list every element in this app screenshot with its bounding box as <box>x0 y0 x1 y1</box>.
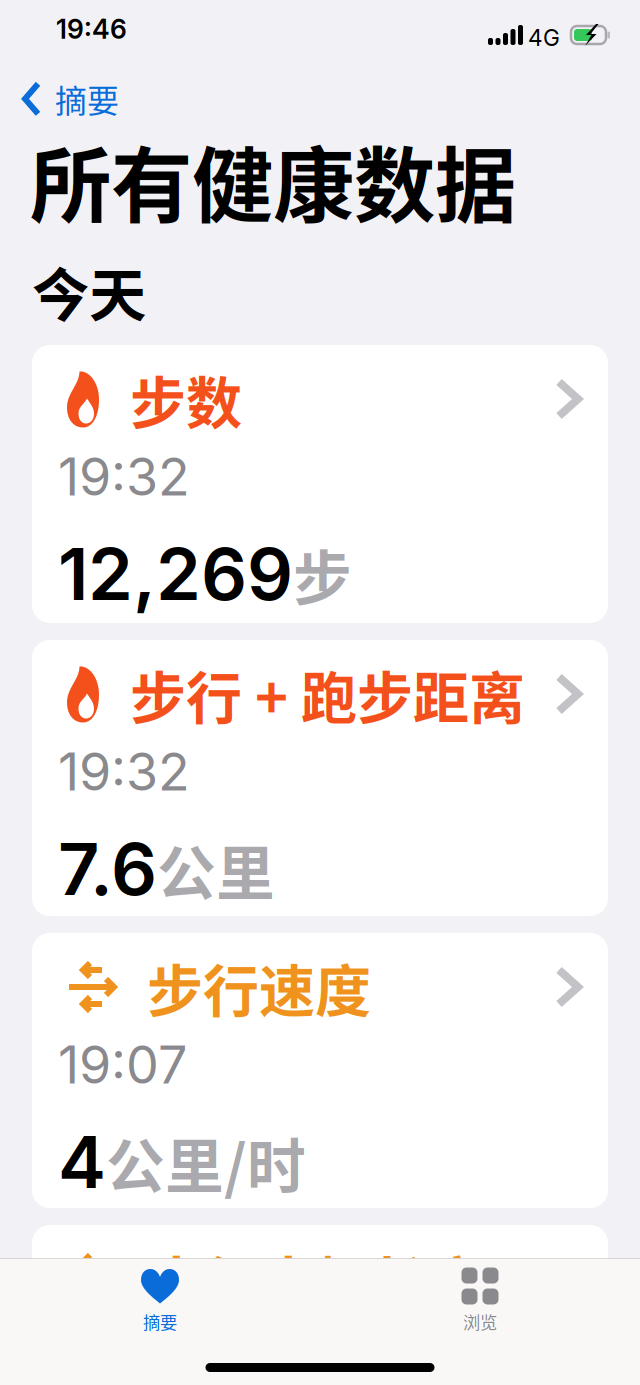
staticText: 19:46 <box>56 13 127 45</box>
button[interactable]: 步行速度 <box>32 933 608 1208</box>
staticText: 步行步幅长度 <box>147 1238 483 1320</box>
staticText: 4G <box>528 24 560 51</box>
staticText: 步数 <box>130 358 242 440</box>
staticText: 19:07 <box>58 1033 187 1096</box>
staticText: 19:32 <box>58 740 190 803</box>
button[interactable]: 摘要 <box>22 70 131 128</box>
staticText: 摘要 <box>55 76 119 122</box>
staticText: 所有健康数据 <box>30 121 516 239</box>
staticText: 今天 <box>32 249 146 332</box>
button[interactable]: 摘要 <box>0 1259 320 1334</box>
button[interactable]: 步行 + 跑步距离 <box>32 640 608 916</box>
staticText: 步行 + 跑步距离 <box>130 653 525 735</box>
staticText: 19:32 <box>58 445 190 508</box>
staticText: 浏览 <box>463 1309 497 1334</box>
staticText: 公里/时 <box>106 1120 306 1205</box>
staticText: 步 <box>293 532 352 617</box>
staticText: 摘要 <box>143 1309 177 1334</box>
staticText: 步行速度 <box>147 946 371 1028</box>
staticText: 19:07 <box>58 1325 187 1385</box>
staticText: 12,269 <box>58 530 293 617</box>
staticText: 4 <box>58 1118 106 1205</box>
button[interactable]: 步数 <box>32 345 608 623</box>
button[interactable]: 步行步幅长度 <box>32 1225 608 1385</box>
staticText: 公里 <box>157 827 275 912</box>
staticText: 7.6 <box>58 825 157 912</box>
button[interactable]: 浏览 <box>320 1259 640 1334</box>
